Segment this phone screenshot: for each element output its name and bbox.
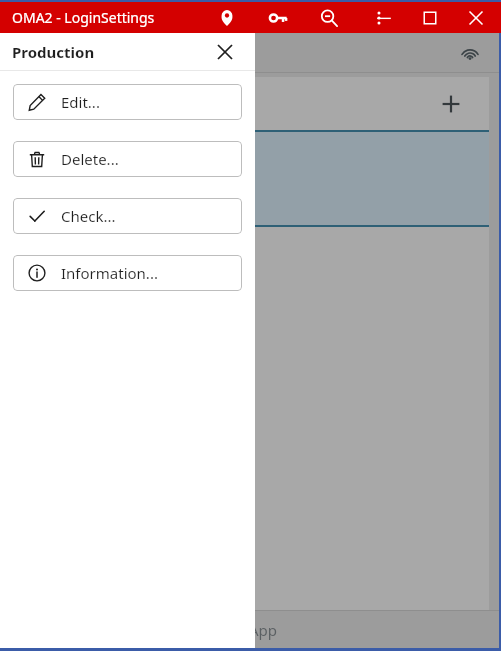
staticText: Port: 7002	[18, 257, 93, 277]
button[interactable]: Close	[211, 38, 239, 66]
button[interactable]: Close	[461, 3, 491, 33]
button[interactable]: Information...	[13, 255, 242, 291]
staticText: App	[249, 620, 278, 640]
button[interactable]: Minimize	[369, 3, 399, 33]
button[interactable]: Edit...	[13, 84, 242, 120]
staticText: Check...	[61, 206, 116, 226]
staticText: OMA2 - LoginSettings	[12, 8, 155, 27]
button[interactable]: Port: 7002	[4, 227, 489, 317]
staticText: Delete...	[61, 149, 119, 169]
button[interactable]: Port: 7102	[4, 132, 489, 225]
staticText: Information...	[61, 263, 158, 283]
button[interactable]: Delete...	[13, 141, 242, 177]
staticText: Edit...	[61, 92, 100, 112]
button[interactable]: Wi-Fi	[455, 38, 485, 68]
button[interactable]: Credentials	[263, 3, 293, 33]
button[interactable]: App	[0, 611, 499, 648]
button[interactable]: Location	[212, 3, 242, 33]
staticText: oma2.clevcn.com	[18, 180, 132, 199]
staticText: Port: 7102	[18, 154, 93, 174]
button[interactable]: Maximize	[415, 3, 445, 33]
button[interactable]: Add	[435, 88, 467, 120]
button[interactable]: More options	[364, 3, 394, 33]
staticText: Production	[12, 42, 95, 62]
button[interactable]: Check...	[13, 198, 242, 234]
button[interactable]: Zoom out	[314, 3, 344, 33]
staticText: Settings	[6, 41, 71, 64]
